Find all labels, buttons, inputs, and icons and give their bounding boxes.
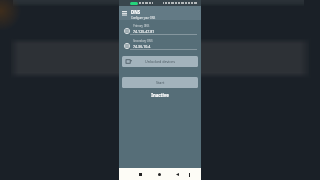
button[interactable]: Home (155, 170, 164, 179)
button[interactable]: Open navigation menu (119, 6, 130, 20)
button[interactable]: Unlocked devices (122, 56, 198, 67)
button[interactable]: Recents (136, 170, 145, 179)
staticText: DNS (131, 9, 141, 15)
staticText: 74.125.47.81 (133, 29, 155, 34)
button[interactable]: Secondary DNS (119, 37, 201, 52)
staticText: Inactive (119, 92, 201, 98)
staticText: Start (156, 80, 165, 85)
button[interactable]: Back (173, 170, 182, 179)
staticText: Primary DNS (133, 24, 150, 28)
staticText: Configure your DNS (131, 16, 156, 20)
button[interactable]: Primary DNS (119, 22, 201, 37)
button[interactable]: Start (122, 77, 198, 88)
staticText: Unlocked devices (145, 59, 175, 64)
staticText: Secondary DNS (133, 39, 153, 43)
button[interactable]: Hide keyboard (185, 170, 194, 179)
staticText: 74.36.10.4 (133, 44, 151, 49)
